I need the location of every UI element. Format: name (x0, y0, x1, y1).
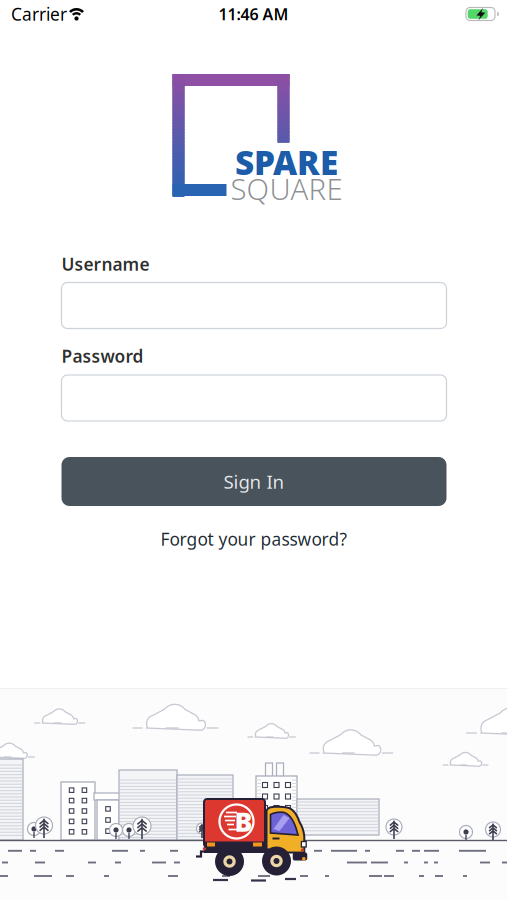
staticText: Username (61, 252, 149, 275)
staticText: Forgot your password? (160, 527, 347, 550)
staticText: B (234, 804, 252, 839)
staticText: SQUARE (230, 169, 342, 208)
staticText: Sign In (223, 469, 284, 494)
button[interactable]: Sign In (61, 457, 446, 506)
button[interactable]: Username (61, 282, 446, 328)
staticText: Carrier (11, 2, 67, 25)
button[interactable]: Forgot your password? (160, 527, 347, 550)
button[interactable]: Password (61, 375, 446, 421)
staticText: 11:46 AM (218, 3, 288, 25)
staticText: Password (61, 344, 143, 367)
staticText: SPARE (235, 140, 338, 184)
